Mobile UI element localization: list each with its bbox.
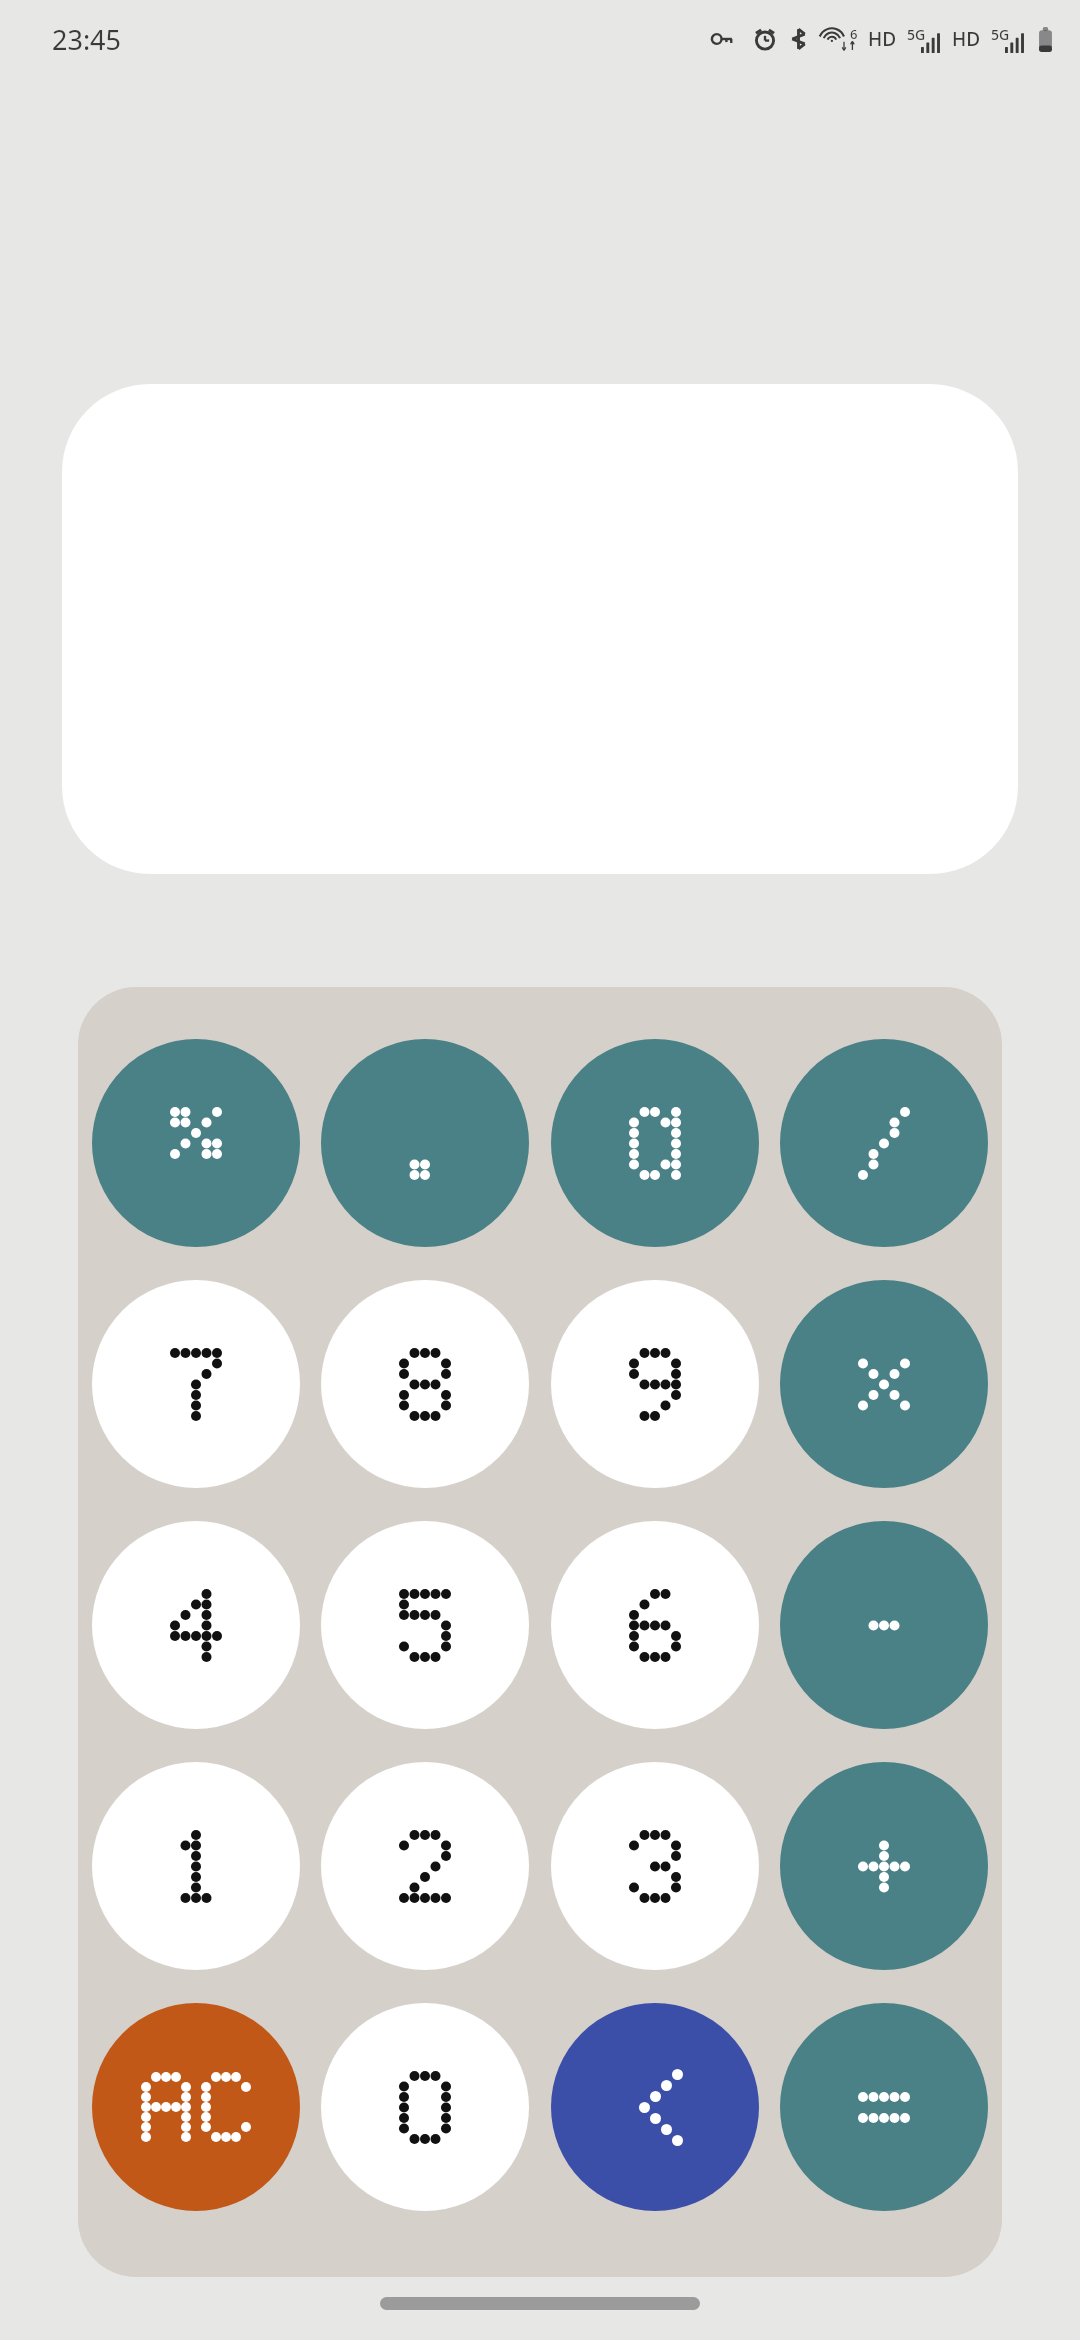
- staticText: 23:45: [52, 21, 122, 58]
- button[interactable]: Decimal point: [321, 1039, 529, 1247]
- button[interactable]: Minus: [780, 1521, 988, 1729]
- button[interactable]: Parentheses: [551, 1039, 759, 1247]
- staticText: HD: [952, 26, 981, 52]
- staticText: 6: [850, 25, 858, 43]
- button[interactable]: Four: [92, 1521, 300, 1729]
- button[interactable]: Plus: [780, 1762, 988, 1970]
- button[interactable]: Multiply: [780, 1280, 988, 1488]
- staticText: 5G: [991, 25, 1010, 44]
- button[interactable]: Five: [321, 1521, 529, 1729]
- button[interactable]: One: [92, 1762, 300, 1970]
- button[interactable]: Percent: [92, 1039, 300, 1247]
- staticText: 5G: [907, 25, 926, 44]
- staticText: HD: [868, 26, 897, 52]
- button[interactable]: Six: [551, 1521, 759, 1729]
- button[interactable]: Zero: [321, 2003, 529, 2211]
- button[interactable]: Three: [551, 1762, 759, 1970]
- button[interactable]: Nine: [551, 1280, 759, 1488]
- button[interactable]: Backspace: [551, 2003, 759, 2211]
- button[interactable]: Eight: [321, 1280, 529, 1488]
- button[interactable]: All clear: [92, 2003, 300, 2211]
- button[interactable]: Equals: [780, 2003, 988, 2211]
- button[interactable]: Seven: [92, 1280, 300, 1488]
- button[interactable]: Divide: [780, 1039, 988, 1247]
- button[interactable]: Two: [321, 1762, 529, 1970]
